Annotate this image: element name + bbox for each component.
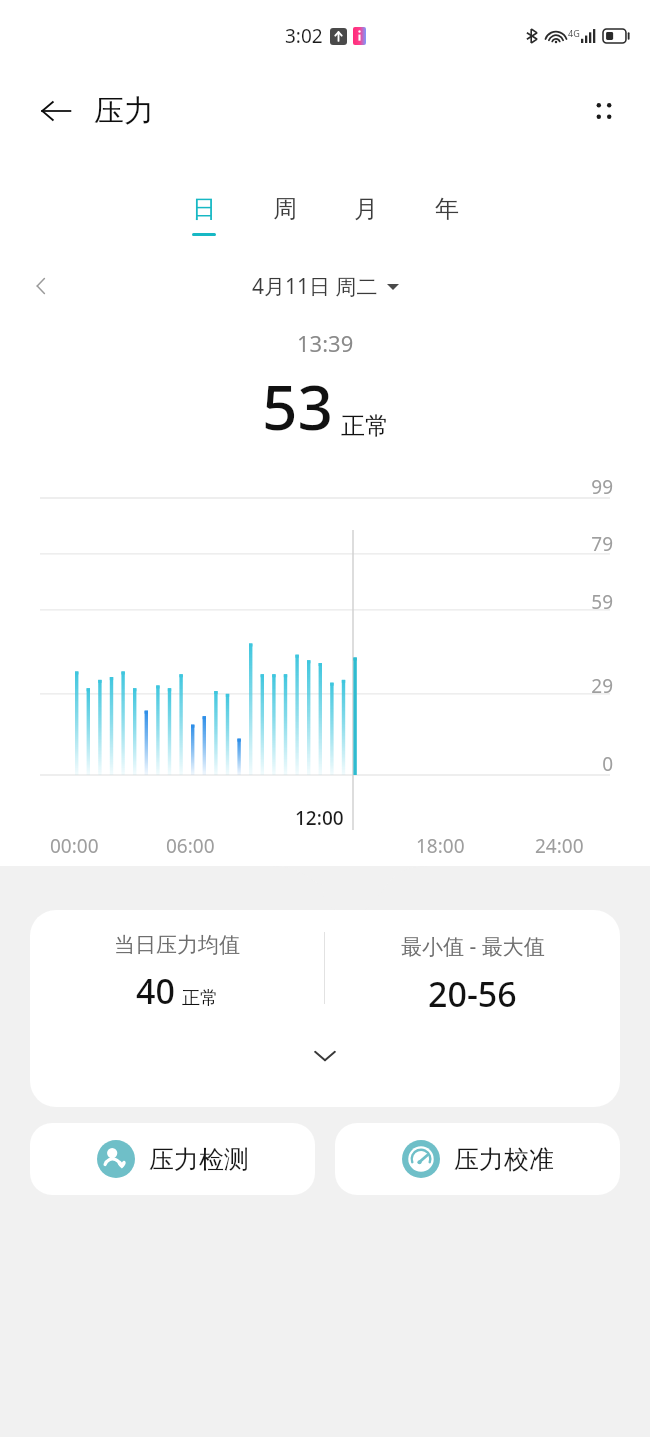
button[interactable]: Back	[34, 89, 78, 133]
button[interactable]: More options	[580, 87, 628, 135]
staticText: 00:00	[50, 833, 99, 859]
staticText: 13:39	[297, 328, 354, 358]
staticText: 59	[573, 589, 613, 615]
staticText: 20-56	[428, 971, 517, 1017]
button[interactable]: Expand	[302, 1033, 348, 1079]
staticText: 06:00	[166, 833, 215, 859]
staticText: 40	[136, 968, 175, 1014]
button[interactable]: 月	[325, 192, 406, 238]
staticText: 53	[262, 364, 333, 448]
staticText: 最小值 - 最大值	[401, 932, 545, 961]
staticText: 年	[435, 194, 459, 224]
button[interactable]: 年	[406, 192, 487, 238]
button[interactable]: 周	[244, 192, 325, 238]
staticText: 当日压力均值	[114, 932, 240, 958]
staticText: 3:02	[285, 23, 323, 49]
staticText: 0	[573, 751, 613, 777]
button[interactable]: 4月11日 周二	[252, 272, 399, 301]
button[interactable]: 压力校准	[335, 1123, 620, 1195]
staticText: 月	[354, 194, 378, 224]
staticText: 24:00	[535, 833, 584, 859]
staticText: 18:00	[416, 833, 465, 859]
staticText: 12:00	[295, 805, 344, 831]
staticText: 日	[192, 194, 216, 224]
staticText: 压力校准	[454, 1144, 554, 1175]
button[interactable]: 当日压力均值	[30, 910, 620, 1107]
staticText: 压力检测	[149, 1144, 249, 1175]
button[interactable]: Previous day	[20, 266, 64, 306]
staticText: 99	[573, 474, 613, 500]
button[interactable]: 压力检测	[30, 1123, 315, 1195]
staticText: 周	[273, 194, 297, 224]
staticText: 4G	[568, 27, 580, 39]
staticText: 4月11日 周二	[252, 272, 378, 301]
button[interactable]: 日	[163, 192, 244, 238]
staticText: 正常	[182, 987, 218, 1010]
staticText: 29	[573, 673, 613, 699]
staticText: 压力	[94, 92, 154, 130]
staticText: 79	[573, 531, 613, 557]
staticText: 正常	[341, 411, 389, 441]
